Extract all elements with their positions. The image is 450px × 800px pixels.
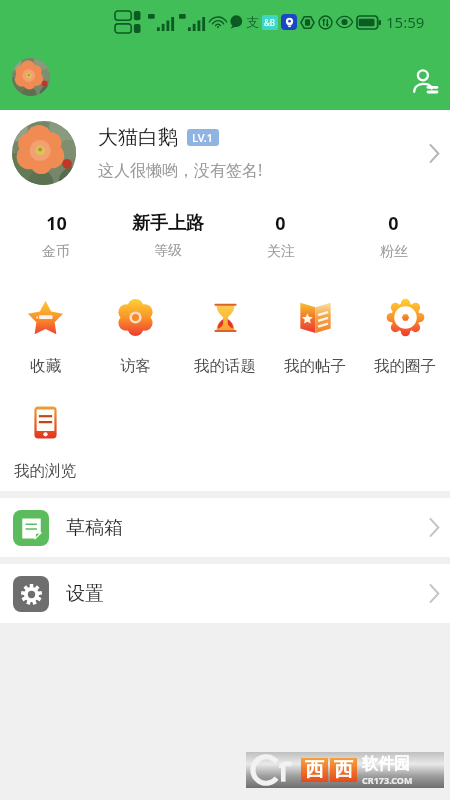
staticText: 新手上路 bbox=[132, 212, 204, 235]
button[interactable]: 我的帖子 bbox=[270, 270, 360, 376]
button[interactable]: Avatar bbox=[12, 58, 50, 96]
button[interactable]: 大猫白鹅 bbox=[0, 110, 450, 196]
staticText: 大猫白鹅 bbox=[98, 125, 178, 150]
button[interactable]: 草稿箱 bbox=[0, 498, 450, 557]
staticText: 软件园 bbox=[362, 754, 410, 774]
staticText: 我的圈子 bbox=[374, 356, 436, 376]
button[interactable]: Friends bbox=[400, 57, 448, 105]
staticText: LV.1 bbox=[192, 130, 214, 145]
staticText: 我的浏览 bbox=[14, 461, 76, 481]
staticText: 西 bbox=[305, 758, 324, 782]
button[interactable]: 10 bbox=[0, 196, 112, 270]
staticText: 这人很懒哟，没有签名! bbox=[98, 159, 263, 181]
staticText: 支 bbox=[246, 14, 259, 30]
staticText: 等级 bbox=[154, 242, 182, 260]
staticText: 关注 bbox=[267, 243, 295, 261]
button[interactable]: 新手上路 bbox=[112, 196, 224, 270]
staticText: 西 bbox=[334, 758, 353, 782]
staticText: 收藏 bbox=[30, 356, 61, 376]
staticText: CR173.COM bbox=[362, 774, 413, 786]
staticText: 0 bbox=[275, 211, 286, 236]
staticText: 我的话题 bbox=[194, 356, 256, 376]
staticText: 粉丝 bbox=[380, 243, 408, 261]
button[interactable]: 设置 bbox=[0, 564, 450, 623]
staticText: 金币 bbox=[42, 243, 70, 261]
staticText: 15:59 bbox=[386, 12, 425, 32]
staticText: 0 bbox=[388, 211, 399, 236]
staticText: 10 bbox=[46, 211, 67, 236]
staticText: 草稿箱 bbox=[66, 516, 123, 540]
staticText: &B bbox=[264, 17, 276, 28]
button[interactable]: 我的浏览 bbox=[0, 385, 90, 481]
staticText: 设置 bbox=[66, 582, 104, 606]
button[interactable]: 0 bbox=[224, 196, 337, 270]
staticText: 我的帖子 bbox=[284, 356, 346, 376]
button[interactable]: 收藏 bbox=[0, 270, 90, 376]
button[interactable]: 我的话题 bbox=[180, 270, 270, 376]
staticText: 访客 bbox=[120, 356, 151, 376]
button[interactable]: 访客 bbox=[90, 270, 180, 376]
button[interactable]: 0 bbox=[337, 196, 450, 270]
button[interactable]: 我的圈子 bbox=[360, 270, 450, 376]
